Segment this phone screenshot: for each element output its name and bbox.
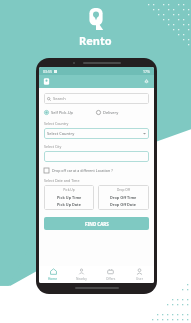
button[interactable]: Self Pick-Up <box>44 110 96 115</box>
button[interactable]: User <box>125 266 154 283</box>
staticText: Drop off car at a different Location ? <box>52 168 113 173</box>
button[interactable]: Notifications <box>143 78 150 85</box>
staticText: Delivery <box>103 110 119 115</box>
staticText: Nearby <box>76 277 87 281</box>
staticText: Pick-Up <box>63 188 75 192</box>
staticText: Select Country <box>44 121 69 126</box>
staticText: Pick Up Date <box>57 202 82 207</box>
button[interactable]: Nearby <box>67 266 96 283</box>
button[interactable]: FIND CARS <box>44 217 149 230</box>
staticText: Pick Up Time <box>57 195 82 200</box>
staticText: Offers <box>106 277 116 281</box>
staticText: User <box>136 277 143 281</box>
button[interactable] <box>44 151 149 162</box>
staticText: Rento <box>79 33 112 48</box>
staticText: 03:55 <box>43 69 52 74</box>
staticText: Home <box>48 277 58 281</box>
staticText: Self Pick-Up <box>51 110 74 115</box>
staticText: FIND CARS <box>85 221 109 227</box>
staticText: Drop Off <box>117 188 130 192</box>
button[interactable]: Search <box>44 93 149 104</box>
button[interactable]: Pick-Up <box>44 185 94 210</box>
button[interactable]: Drop off car at a different Location ? <box>44 168 149 173</box>
button[interactable]: Delivery <box>96 110 149 115</box>
staticText: Select City <box>44 144 62 149</box>
button[interactable]: Drop Off <box>98 185 149 210</box>
staticText: 17% <box>143 69 150 74</box>
staticText: Search <box>53 96 66 101</box>
staticText: Select Date and Time <box>44 178 80 183</box>
staticText: Select Country <box>47 131 75 136</box>
button[interactable]: Rento home <box>43 78 50 85</box>
button[interactable]: Offers <box>96 266 125 283</box>
button[interactable]: Select Country <box>44 128 149 139</box>
staticText: Drop Off Time <box>110 195 137 200</box>
staticText: Drop Off Date <box>110 202 137 207</box>
button[interactable]: Home <box>39 266 67 283</box>
